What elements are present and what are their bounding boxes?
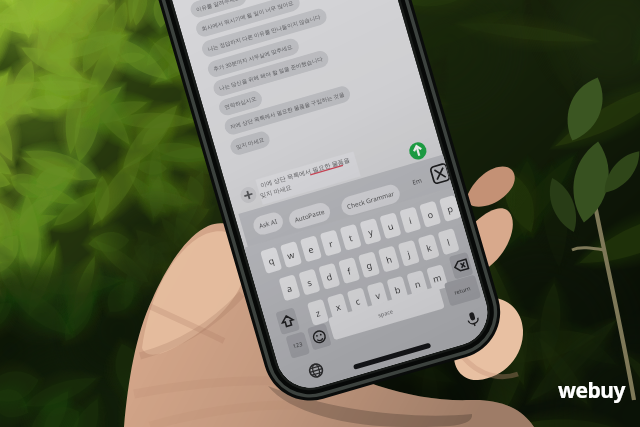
button[interactable]: Keyboard row q w e r t y u i o p — [248, 248, 468, 292]
button[interactable]: Emoji — [302, 322, 328, 348]
button[interactable]: Switch keyboard — [298, 358, 326, 386]
button[interactable]: Numbers and symbols — [278, 334, 304, 360]
button[interactable]: Send message — [406, 140, 432, 166]
button[interactable]: AutoPaste — [282, 198, 338, 224]
button[interactable]: Check Grammar — [332, 186, 414, 212]
button[interactable]: Dismiss suggestions — [428, 168, 454, 194]
button[interactable]: Ask AI — [250, 208, 290, 232]
button[interactable]: Keyboard row a s d f g h j k l — [258, 282, 478, 322]
button[interactable]: Return — [432, 282, 476, 310]
button[interactable]: Space — [330, 306, 426, 336]
button[interactable]: Keyboard row z x c v b n m — [268, 314, 474, 354]
button[interactable]: Shift — [272, 318, 298, 344]
button[interactable]: Backspace — [446, 258, 474, 286]
button[interactable]: Add attachment — [238, 186, 262, 210]
button[interactable]: Dictation — [452, 290, 478, 320]
